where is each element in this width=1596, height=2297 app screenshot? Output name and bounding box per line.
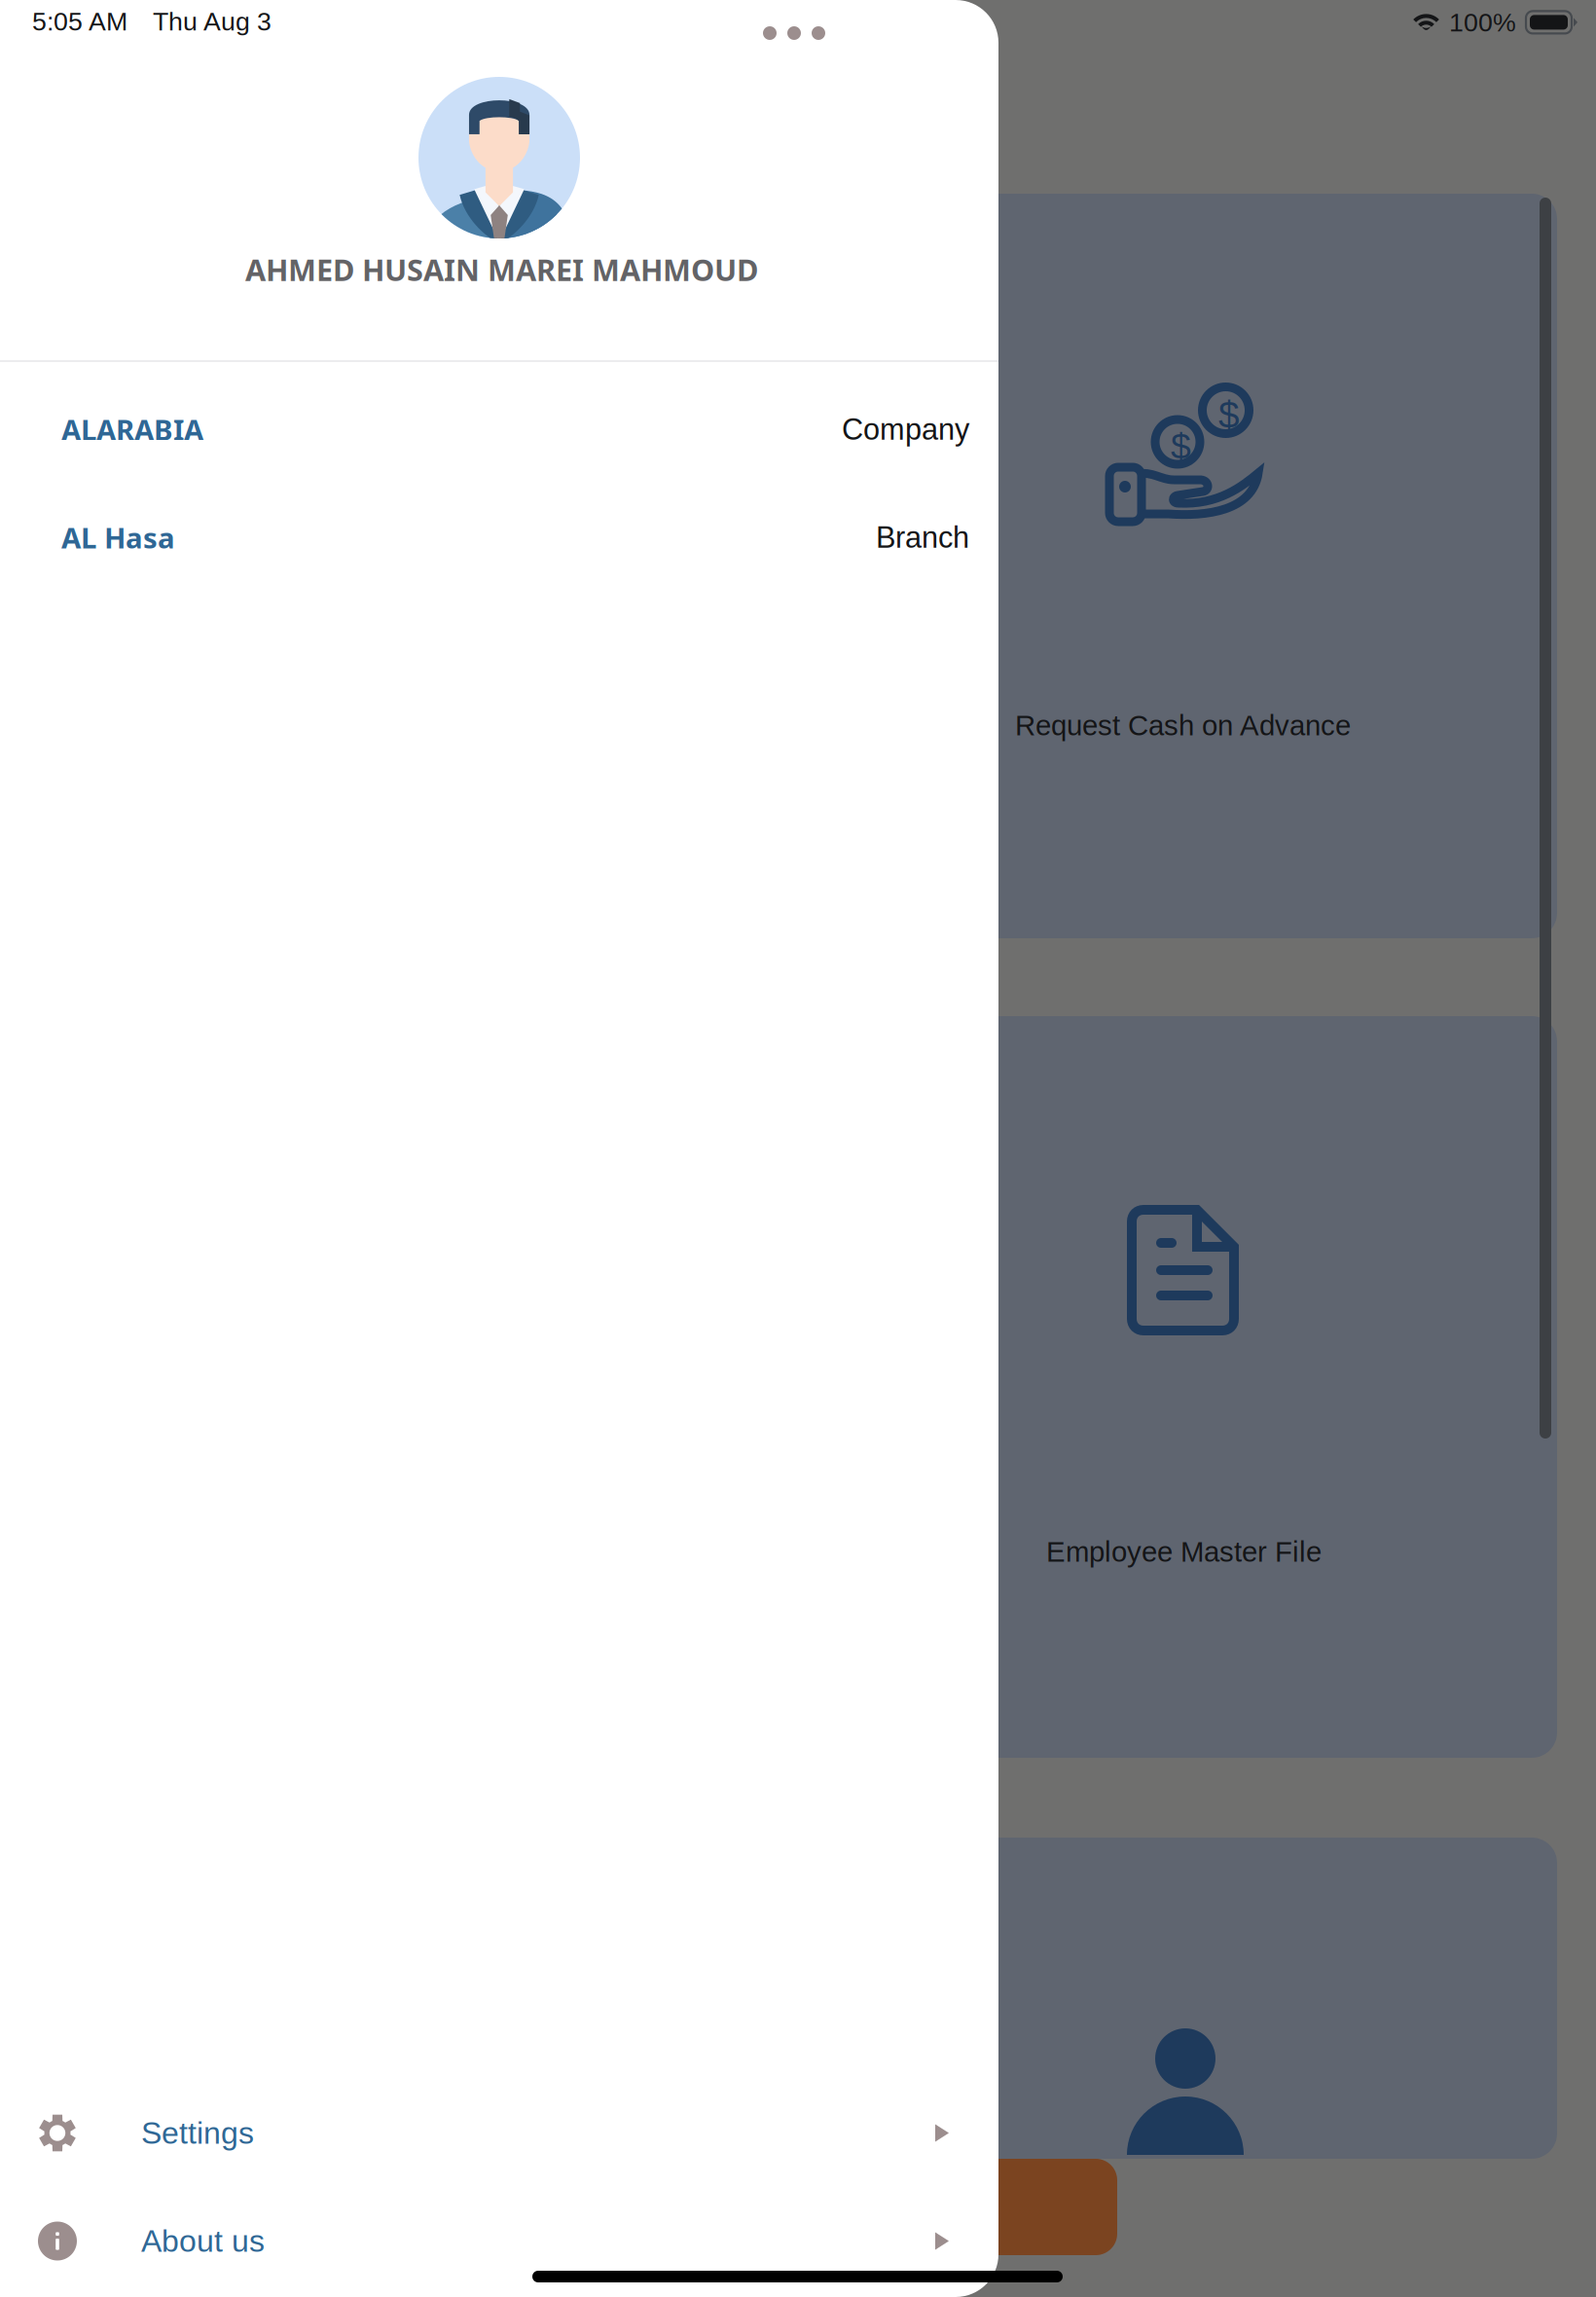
staticText: About us — [141, 2224, 265, 2258]
button[interactable]: AL Hasa — [0, 488, 998, 587]
button[interactable]: $ — [27, 194, 1557, 938]
button[interactable]: About us — [0, 2186, 998, 2296]
staticText: Company — [842, 413, 969, 446]
staticText: Thu Aug 3 — [153, 7, 272, 36]
button[interactable] — [27, 1838, 1557, 2159]
button[interactable]: Multitasking controls — [751, 15, 837, 52]
staticText: AHMED HUSAIN MAREI MAHMOUD — [245, 249, 758, 290]
button[interactable]: ALARABIA — [0, 380, 998, 479]
staticText: Request Cash on Advance — [1015, 710, 1351, 741]
staticText: Branch — [876, 521, 969, 554]
staticText: 5:05 AM — [32, 7, 127, 36]
button[interactable]: Employee Master File — [27, 1016, 1557, 1758]
staticText: $ — [1218, 394, 1240, 436]
staticText: Settings — [141, 2116, 254, 2150]
button[interactable]: Settings — [0, 2078, 998, 2188]
staticText: Employee Master File — [1046, 1536, 1322, 1568]
staticText: AL Hasa — [61, 518, 175, 557]
staticText: 100% — [1449, 8, 1516, 37]
staticText: $ — [1171, 426, 1191, 467]
staticText: ALARABIA — [61, 410, 203, 449]
